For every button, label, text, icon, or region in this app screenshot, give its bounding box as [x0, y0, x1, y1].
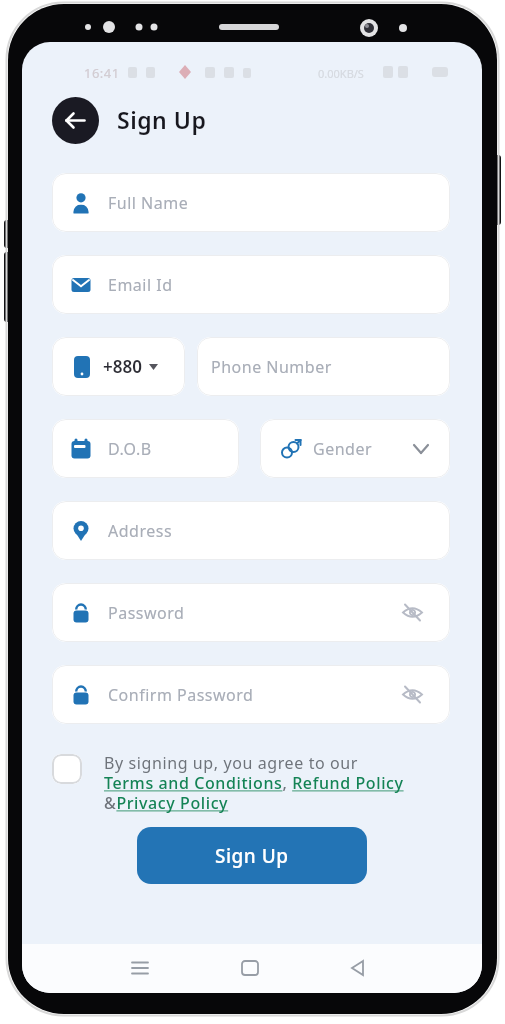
staticText: Gender [313, 438, 373, 460]
button[interactable]: +880 [52, 337, 185, 396]
button[interactable] [52, 754, 82, 784]
button[interactable]: Terms and Conditions, Refund Policy [104, 772, 404, 794]
staticText: Full Name [108, 192, 189, 214]
button[interactable] [120, 948, 160, 988]
button[interactable]: Password [52, 583, 450, 642]
staticText: By signing up, you agree to our [104, 752, 359, 774]
button[interactable]: Gender [260, 419, 450, 478]
button[interactable]: Sign Up [137, 827, 367, 884]
staticText: D.O.B [108, 438, 152, 460]
button[interactable] [230, 948, 270, 988]
staticText: Email Id [108, 274, 173, 296]
staticText: Password [108, 602, 185, 624]
staticText: 0.00KB/S [318, 66, 364, 81]
button[interactable]: D.O.B [52, 419, 239, 478]
staticText: Phone Number [211, 356, 332, 378]
staticText: 16:41 [84, 64, 120, 82]
staticText: Address [108, 520, 173, 542]
staticText: Confirm Password [108, 684, 254, 706]
button[interactable]: Address [52, 501, 450, 560]
staticText: Sign Up [215, 843, 289, 869]
button[interactable]: &Privacy Policy [104, 792, 229, 814]
staticText: +880 [103, 355, 142, 378]
button[interactable]: Full Name [52, 173, 450, 232]
staticText: Sign Up [117, 104, 207, 135]
button[interactable]: Phone Number [197, 337, 450, 396]
button[interactable]: Email Id [52, 255, 450, 314]
button[interactable]: Confirm Password [52, 665, 450, 724]
button[interactable] [52, 97, 99, 144]
button[interactable] [338, 948, 378, 988]
